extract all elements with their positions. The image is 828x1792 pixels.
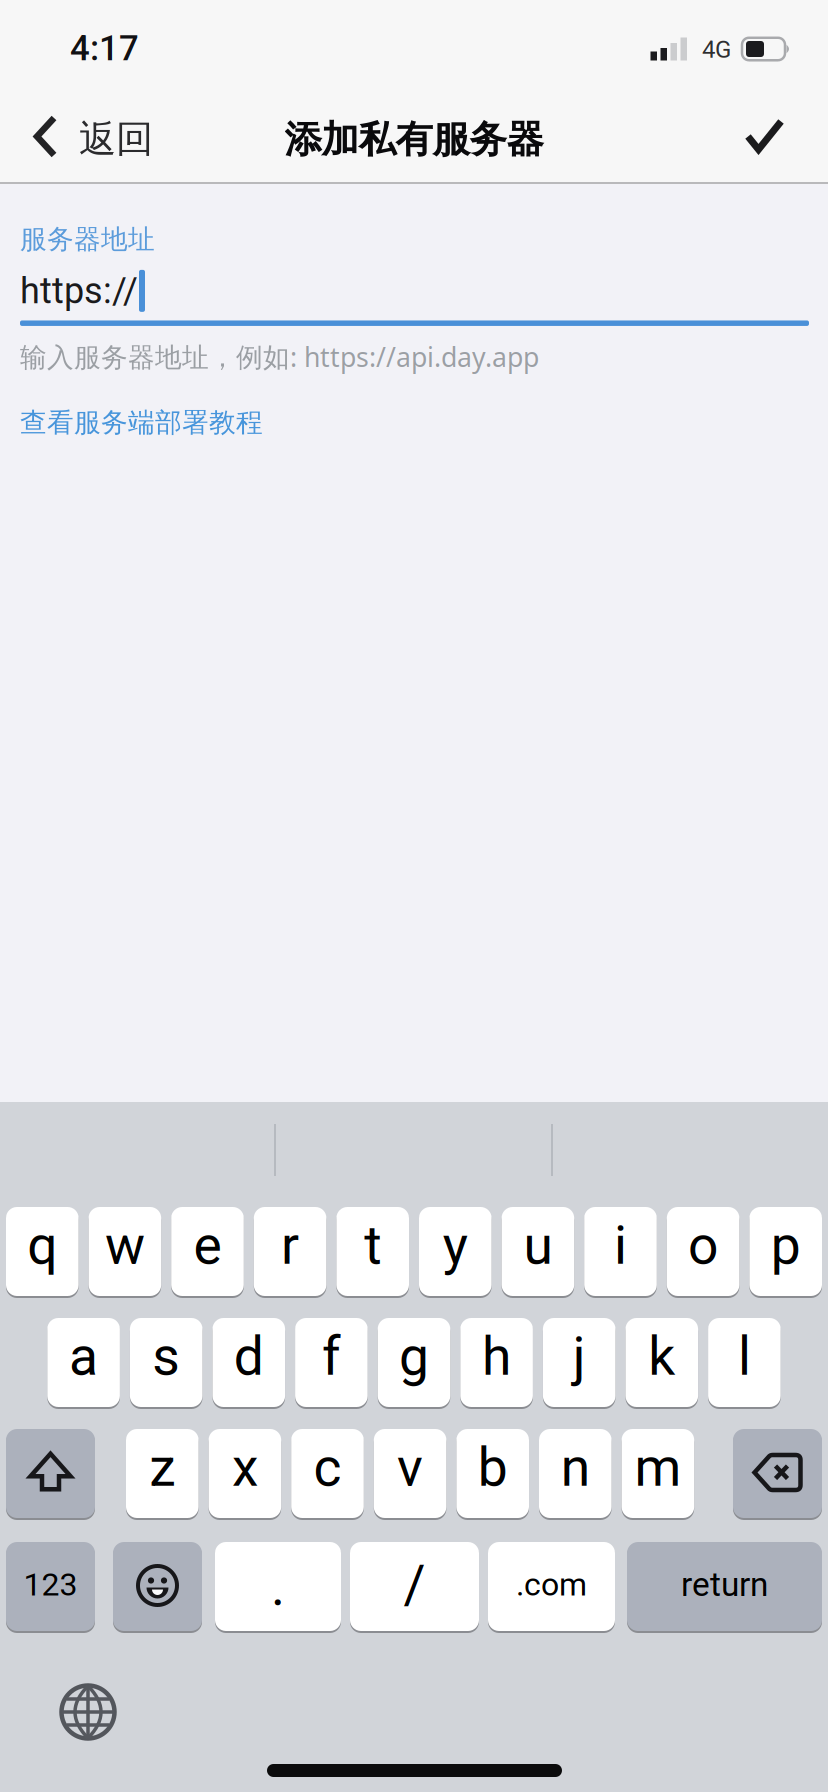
button[interactable]: a (47, 1318, 120, 1407)
staticText: . (271, 1555, 285, 1618)
button[interactable]: n (539, 1429, 612, 1518)
staticText: d (234, 1325, 264, 1388)
button[interactable]: v (374, 1429, 446, 1518)
staticText: a (69, 1325, 98, 1388)
staticText: b (478, 1436, 508, 1499)
staticText: k (648, 1325, 675, 1388)
button[interactable] (6, 1429, 95, 1518)
staticText: z (149, 1436, 175, 1499)
staticText: 添加私有服务器 (284, 117, 543, 162)
button[interactable]: x (209, 1429, 281, 1518)
button[interactable]: f (295, 1318, 368, 1407)
staticText: n (561, 1436, 590, 1499)
button[interactable]: p (749, 1207, 822, 1296)
button[interactable]: j (543, 1318, 615, 1407)
button[interactable]: w (89, 1207, 161, 1296)
staticText: 服务器地址 (20, 223, 155, 256)
button[interactable]: b (456, 1429, 529, 1518)
button[interactable] (733, 1429, 822, 1518)
button[interactable]: g (378, 1318, 450, 1407)
staticText: .com (516, 1566, 587, 1603)
staticText: p (771, 1214, 801, 1277)
button[interactable]: z (126, 1429, 199, 1518)
staticText: r (281, 1214, 299, 1277)
button[interactable] (113, 1542, 202, 1631)
button[interactable]: l (708, 1318, 781, 1407)
staticText: g (399, 1325, 429, 1388)
staticText: return (681, 1565, 768, 1604)
staticText: l (738, 1325, 751, 1388)
staticText: j (573, 1325, 586, 1388)
button[interactable]: c (291, 1429, 364, 1518)
staticText: x (232, 1436, 258, 1499)
staticText: e (193, 1214, 221, 1277)
staticText: s (152, 1325, 180, 1388)
staticText: y (443, 1214, 468, 1277)
button[interactable]: m (622, 1429, 694, 1518)
button[interactable]: r (254, 1207, 326, 1296)
staticText: 返回 (79, 116, 153, 162)
staticText: t (364, 1214, 381, 1277)
button[interactable]: h (460, 1318, 533, 1407)
button[interactable]: .com (488, 1542, 615, 1631)
staticText: 输入服务器地址，例如: https://api.day.app (20, 339, 539, 374)
staticText: 4:17 (70, 28, 139, 69)
staticText: i (614, 1214, 627, 1277)
staticText: m (634, 1436, 681, 1499)
button[interactable]: 查看服务端部署教程 (20, 406, 263, 439)
staticText: / (403, 1553, 425, 1616)
button[interactable]: 123 (6, 1542, 95, 1631)
button[interactable]: i (584, 1207, 657, 1296)
staticText: f (322, 1325, 341, 1388)
button[interactable]: d (212, 1318, 285, 1407)
staticText: h (482, 1325, 511, 1388)
staticText: 123 (23, 1566, 77, 1603)
staticText: https:// (20, 270, 138, 312)
staticText: 4G (702, 35, 731, 63)
button[interactable]: o (667, 1207, 739, 1296)
staticText: 查看服务端部署教程 (20, 406, 263, 439)
staticText: u (523, 1214, 552, 1277)
staticText: q (27, 1214, 57, 1277)
button[interactable]: t (336, 1207, 409, 1296)
button[interactable]: s (130, 1318, 202, 1407)
staticText: c (313, 1436, 341, 1499)
button[interactable]: 返回 (0, 113, 153, 159)
button[interactable]: . (215, 1542, 341, 1631)
button[interactable]: y (419, 1207, 492, 1296)
staticText: v (397, 1436, 423, 1499)
button[interactable]: / (350, 1542, 479, 1631)
button[interactable] (55, 1678, 121, 1746)
button[interactable]: u (502, 1207, 574, 1296)
button[interactable]: k (625, 1318, 698, 1407)
button[interactable]: q (6, 1207, 79, 1296)
staticText: o (688, 1214, 718, 1277)
button[interactable] (746, 119, 828, 152)
staticText: w (105, 1214, 145, 1277)
button[interactable]: return (627, 1542, 822, 1631)
button[interactable]: e (171, 1207, 244, 1296)
